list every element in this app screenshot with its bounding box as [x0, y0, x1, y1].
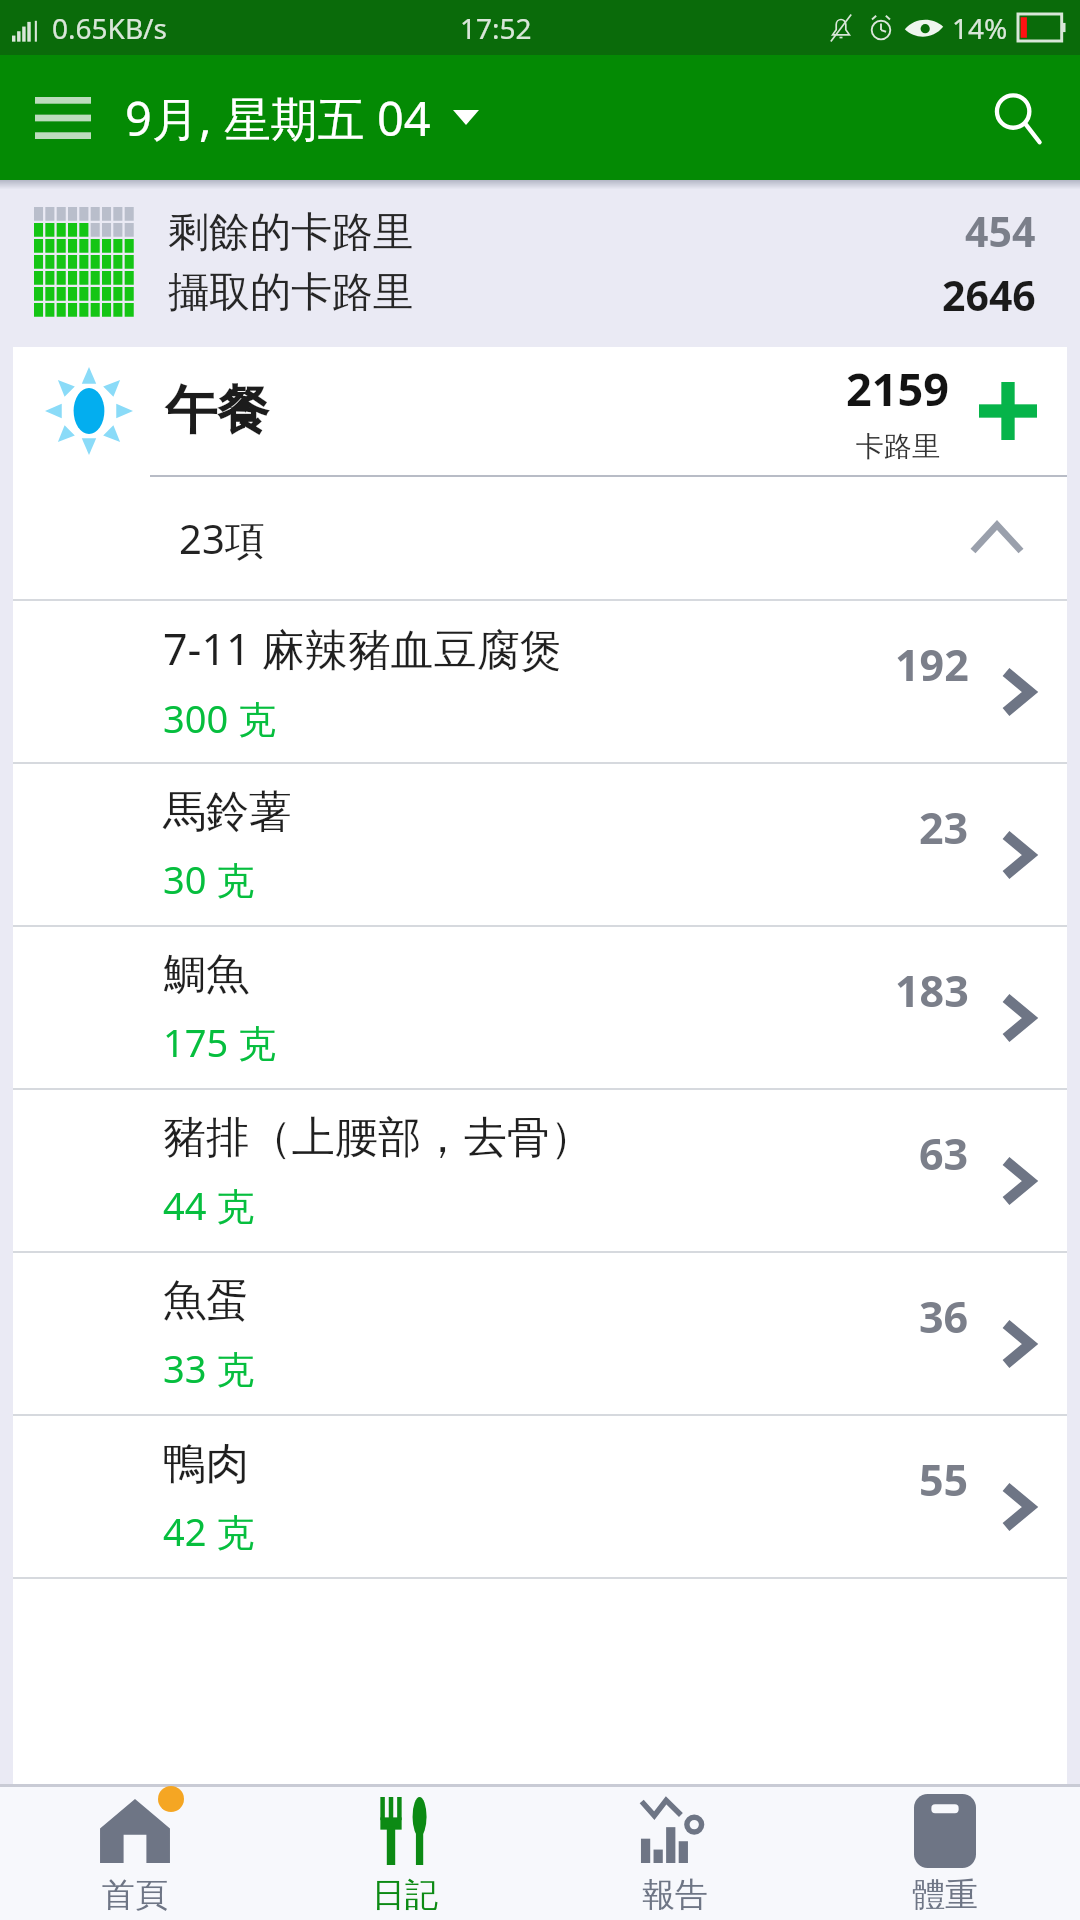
staticText: 報告: [642, 1874, 708, 1916]
button[interactable]: 首頁: [0, 1787, 270, 1920]
button[interactable]: 鴨肉: [13, 1416, 1067, 1577]
staticText: 馬鈴薯: [163, 785, 292, 839]
staticText: 午餐: [165, 378, 269, 444]
button[interactable]: 23項: [13, 477, 1067, 599]
staticText: 豬排（上腰部，去骨）: [163, 1111, 593, 1165]
staticText: 44 克: [163, 1179, 255, 1231]
staticText: 30 克: [163, 853, 255, 905]
button[interactable]: 魚蛋: [13, 1253, 1067, 1414]
staticText: 23項: [179, 511, 265, 566]
staticText: 55: [919, 1450, 969, 1509]
staticText: 63: [919, 1124, 969, 1183]
staticText: 14%: [952, 9, 1008, 47]
staticText: 9月, 星期五 04: [125, 86, 431, 150]
button[interactable]: 剩餘的卡路里: [34, 203, 1036, 323]
button[interactable]: Search: [955, 55, 1080, 180]
button[interactable]: 體重: [810, 1787, 1080, 1920]
staticText: 36: [919, 1287, 969, 1346]
button[interactable]: 鯛魚: [13, 927, 1067, 1088]
button[interactable]: 9月, 星期五 04: [125, 55, 955, 180]
staticText: 7-11 麻辣豬血豆腐煲: [163, 619, 563, 678]
staticText: 300 克: [163, 692, 277, 744]
other: Collapse: [927, 477, 1067, 599]
staticText: 454: [965, 203, 1036, 259]
staticText: 175 克: [163, 1016, 277, 1068]
button[interactable]: 豬排（上腰部，去骨）: [13, 1090, 1067, 1251]
button[interactable]: 日記: [270, 1787, 540, 1920]
staticText: 2159: [846, 358, 949, 419]
staticText: 魚蛋: [163, 1274, 249, 1328]
button[interactable]: 報告: [540, 1787, 810, 1920]
staticText: 42 克: [163, 1505, 255, 1557]
button[interactable]: 馬鈴薯: [13, 764, 1067, 925]
staticText: 33 克: [163, 1342, 255, 1394]
staticText: 日記: [372, 1874, 438, 1916]
button[interactable]: Add food: [949, 347, 1067, 475]
staticText: 體重: [912, 1874, 978, 1916]
staticText: 2646: [942, 267, 1036, 323]
staticText: 首頁: [102, 1874, 168, 1916]
button[interactable]: 7-11 麻辣豬血豆腐煲: [13, 601, 1067, 762]
button[interactable]: Menu: [0, 55, 125, 180]
button[interactable]: 午餐: [13, 347, 1067, 475]
staticText: 鯛魚: [163, 948, 249, 1002]
staticText: 攝取的卡路里: [168, 267, 414, 319]
staticText: 183: [895, 961, 969, 1020]
staticText: 0.65KB/s: [52, 9, 167, 47]
staticText: 鴨肉: [163, 1437, 249, 1491]
staticText: 23: [919, 798, 969, 857]
staticText: 192: [895, 635, 969, 694]
staticText: 剩餘的卡路里: [168, 207, 414, 259]
staticText: 17:52: [460, 9, 532, 47]
staticText: 卡路里: [856, 429, 940, 464]
